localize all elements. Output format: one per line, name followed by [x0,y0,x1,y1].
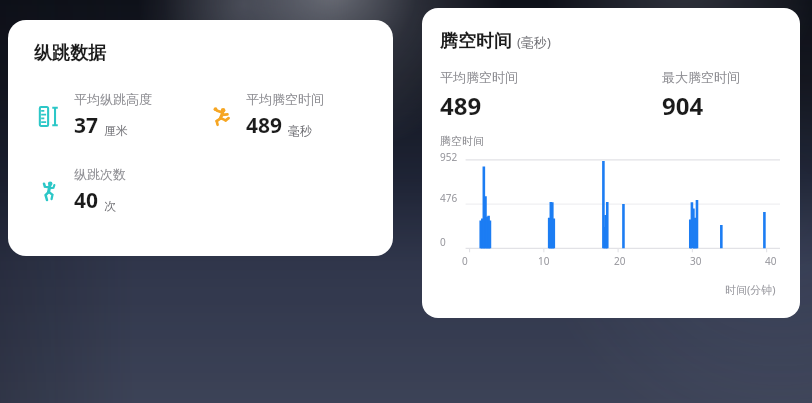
staticText: 次 [104,198,116,213]
staticText: (毫秒) [517,33,551,51]
staticText: 37 [74,111,99,140]
staticText: 0 [462,254,468,268]
staticText: 纵跳次数 [74,166,126,182]
staticText: 40 [765,254,777,268]
button[interactable]: 纵跳数据 [8,20,393,256]
staticText: 腾空时间 [440,134,484,148]
staticText: 489 [246,111,283,140]
other: Average hang time [206,101,236,131]
staticText: 476 [440,191,458,205]
button[interactable]: 平均腾空时间 [440,69,662,122]
staticText: 10 [538,254,550,268]
staticText: 30 [690,254,702,268]
staticText: 平均腾空时间 [440,69,518,85]
other: Average jump height [34,101,64,131]
staticText: 毫秒 [288,123,312,138]
button[interactable]: Jump count [34,166,206,215]
staticText: 952 [440,150,458,164]
staticText: 时间(分钟) [725,282,776,297]
button[interactable]: 腾空时间 [422,8,800,318]
staticText: 纵跳数据 [34,42,106,65]
staticText: 腾空时间 [440,30,512,53]
staticText: 平均纵跳高度 [74,91,152,107]
staticText: 489 [440,89,482,122]
staticText: 厘米 [104,123,128,138]
other: Jump count [34,176,64,206]
staticText: 20 [614,254,626,268]
staticText: 0 [440,235,446,249]
button[interactable]: 最大腾空时间 [662,69,740,122]
staticText: 最大腾空时间 [662,69,740,85]
staticText: 904 [662,89,704,122]
staticText: 40 [74,186,99,215]
button[interactable]: Average hang time [206,91,378,140]
button[interactable]: Average jump height [34,91,206,140]
staticText: 平均腾空时间 [246,91,324,107]
